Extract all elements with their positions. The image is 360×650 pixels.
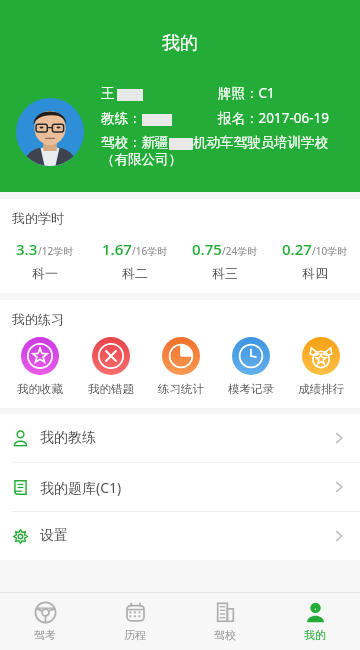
button[interactable]: 0.75 — [180, 239, 270, 281]
staticText: 科四 — [302, 265, 328, 281]
staticText: /16学时 — [132, 244, 168, 258]
staticText: 教练： — [101, 110, 142, 127]
staticText: 0.27 — [282, 239, 312, 259]
staticText: 科二 — [122, 265, 148, 281]
staticText: 模考记录 — [228, 382, 274, 396]
staticText: 我的收藏 — [17, 382, 63, 396]
staticText: 牌照：C1 — [218, 84, 275, 102]
staticText: /12学时 — [38, 244, 74, 258]
staticText: 历程 — [124, 628, 146, 642]
staticText: 我的题库(C1) — [40, 478, 122, 497]
staticText: 1.67 — [102, 239, 132, 259]
staticText: 设置 — [40, 527, 68, 545]
staticText: 科一 — [32, 265, 58, 281]
button[interactable]: 成绩排行 — [286, 337, 356, 396]
button[interactable]: 0.27 — [270, 239, 360, 281]
staticText: 驾校：新疆 — [101, 134, 169, 151]
button[interactable]: 我的错题 — [75, 337, 146, 396]
staticText: 我的学时 — [12, 210, 64, 226]
button[interactable]: 我的教练 — [0, 414, 360, 462]
staticText: 科三 — [212, 265, 238, 281]
button[interactable]: 我的收藏 — [4, 337, 75, 396]
button[interactable]: 练习统计 — [146, 337, 216, 396]
staticText: 0.75 — [192, 239, 222, 259]
button[interactable]: 设置 — [0, 512, 360, 560]
button[interactable]: 历程 — [90, 593, 180, 650]
staticText: 我的 — [0, 32, 360, 55]
button[interactable]: 驾考 — [0, 593, 90, 650]
staticText: 我的练习 — [12, 311, 64, 327]
button[interactable]: 模考记录 — [216, 337, 286, 396]
staticText: 练习统计 — [158, 382, 204, 396]
staticText: 成绩排行 — [298, 382, 344, 396]
button[interactable]: Profile photo — [16, 98, 84, 166]
button[interactable]: 1.67 — [90, 239, 180, 281]
staticText: /10学时 — [312, 244, 348, 258]
button[interactable]: 我的题库(C1) — [0, 463, 360, 511]
staticText: 我的 — [304, 628, 326, 642]
staticText: 报名：2017-06-19 — [218, 109, 329, 127]
staticText: 我的错题 — [88, 382, 134, 396]
staticText: 驾考 — [34, 628, 56, 642]
button[interactable]: 3.3 — [0, 239, 90, 281]
staticText: 3.3 — [16, 239, 38, 259]
button[interactable]: 我的 — [270, 593, 360, 650]
staticText: 王 — [101, 85, 115, 102]
staticText: 我的教练 — [40, 429, 96, 447]
staticText: 机动车驾驶员培训学校 — [193, 134, 328, 151]
staticText: /24学时 — [222, 244, 258, 258]
button[interactable]: 驾校 — [180, 593, 270, 650]
staticText: 驾校 — [214, 628, 236, 642]
staticText: （有限公司） — [101, 151, 182, 168]
